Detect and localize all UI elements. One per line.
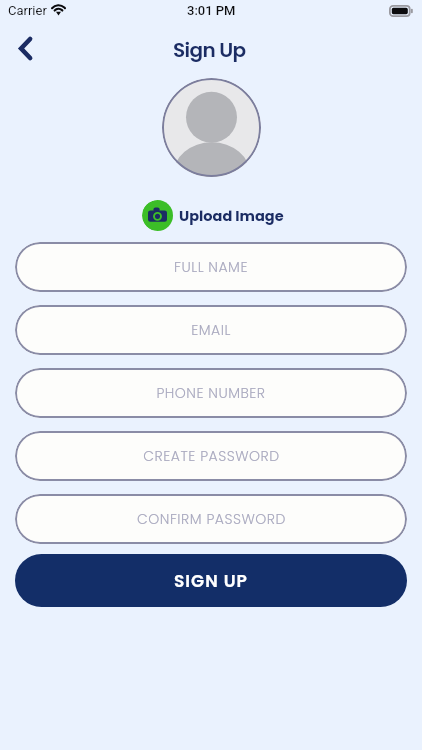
button[interactable]: CREATE PASSWORD bbox=[15, 431, 407, 481]
button[interactable]: SIGN UP bbox=[15, 554, 407, 607]
staticText: SIGN UP bbox=[174, 569, 248, 593]
button[interactable]: PHONE NUMBER bbox=[15, 368, 407, 418]
staticText: CONFIRM PASSWORD bbox=[137, 509, 286, 529]
button[interactable]: CONFIRM PASSWORD bbox=[15, 494, 407, 544]
staticText: Sign Up bbox=[173, 36, 246, 64]
button[interactable]: Upload Image bbox=[142, 200, 284, 231]
staticText: FULL NAME bbox=[174, 257, 248, 277]
staticText: Carrier bbox=[8, 3, 47, 18]
button[interactable]: Back bbox=[4, 27, 46, 69]
staticText: EMAIL bbox=[191, 320, 231, 340]
staticText: PHONE NUMBER bbox=[156, 383, 266, 403]
staticText: 3:01 PM bbox=[187, 3, 236, 18]
staticText: CREATE PASSWORD bbox=[143, 446, 280, 466]
button[interactable]: Profile photo bbox=[162, 78, 261, 177]
staticText: Upload Image bbox=[179, 206, 284, 226]
button[interactable]: EMAIL bbox=[15, 305, 407, 355]
button[interactable]: FULL NAME bbox=[15, 242, 407, 292]
